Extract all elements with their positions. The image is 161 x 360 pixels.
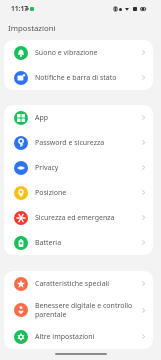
staticText: Benessere digitale e controllo parentale (35, 301, 137, 319)
button[interactable]: Benessere digitale e controllo parentale (4, 296, 153, 324)
staticText: 11:17 (11, 4, 28, 13)
button[interactable]: Suono e vibrazione (4, 40, 153, 65)
staticText: Suono e vibrazione (35, 48, 137, 58)
button[interactable]: Notifiche e barra di stato (4, 65, 153, 90)
staticText: Sicurezza ed emergenza (35, 213, 137, 223)
button[interactable]: Privacy (4, 155, 153, 180)
staticText: Posizione (35, 188, 137, 198)
staticText: Impostazioni (8, 23, 56, 34)
staticText: Password e sicurezza (35, 138, 137, 148)
button[interactable]: Password e sicurezza (4, 130, 153, 155)
staticText: App (35, 113, 137, 123)
button[interactable]: Batteria (4, 230, 153, 255)
button[interactable]: Sicurezza ed emergenza (4, 205, 153, 230)
button[interactable]: Posizione (4, 180, 153, 205)
button[interactable]: App (4, 105, 153, 130)
button[interactable]: Caratteristiche speciali (4, 271, 153, 296)
button[interactable]: Altre impostazioni (4, 324, 153, 349)
staticText: Altre impostazioni (35, 332, 137, 342)
staticText: Notifiche e barra di stato (35, 73, 137, 83)
staticText: Batteria (35, 238, 137, 248)
staticText: Privacy (35, 163, 137, 173)
staticText: Caratteristiche speciali (35, 279, 137, 289)
